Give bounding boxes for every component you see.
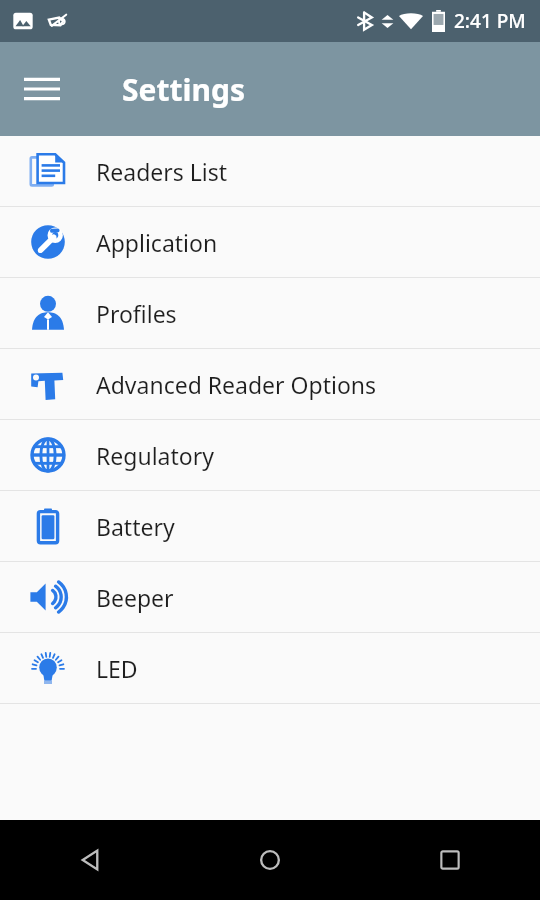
staticText: Advanced Reader Options xyxy=(96,369,377,400)
button[interactable]: Profiles xyxy=(0,278,540,348)
button[interactable]: Battery xyxy=(0,491,540,561)
button[interactable]: Readers List xyxy=(0,136,540,206)
staticText: Regulatory xyxy=(96,440,214,471)
button[interactable]: Back xyxy=(0,820,180,900)
button[interactable]: Advanced Reader Options xyxy=(0,349,540,419)
button[interactable]: Recent apps xyxy=(360,820,540,900)
button[interactable]: Application xyxy=(0,207,540,277)
button[interactable]: LED xyxy=(0,633,540,703)
staticText: LED xyxy=(96,653,138,684)
button[interactable]: Open navigation menu xyxy=(16,63,68,115)
staticText: 2:41 PM xyxy=(454,8,526,34)
staticText: Beeper xyxy=(96,582,174,613)
staticText: Profiles xyxy=(96,298,177,329)
button[interactable]: Regulatory xyxy=(0,420,540,490)
staticText: Application xyxy=(96,227,218,258)
staticText: Readers List xyxy=(96,156,228,187)
staticText: Battery xyxy=(96,511,175,542)
button[interactable]: Beeper xyxy=(0,562,540,632)
staticText: Settings xyxy=(122,69,245,110)
button[interactable]: Home xyxy=(180,820,360,900)
